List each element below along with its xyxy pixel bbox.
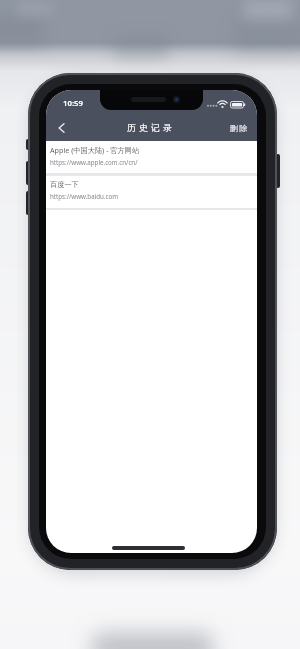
staticText: 删除 [229, 123, 248, 133]
button[interactable] [48, 117, 74, 139]
button[interactable]: 百度一下 [46, 176, 257, 208]
staticText: 10:59 [63, 98, 83, 109]
button[interactable]: Apple (中国大陆) - 官方网站 [46, 141, 257, 173]
staticText: https://www.apple.com.cn/cn/ [50, 158, 138, 166]
button[interactable]: 删除 [229, 123, 248, 133]
staticText: 百度一下 [50, 180, 79, 189]
staticText: https://www.baidu.com [50, 192, 118, 200]
staticText: Apple (中国大陆) - 官方网站 [50, 145, 140, 155]
staticText: 历史记录 [127, 123, 175, 134]
